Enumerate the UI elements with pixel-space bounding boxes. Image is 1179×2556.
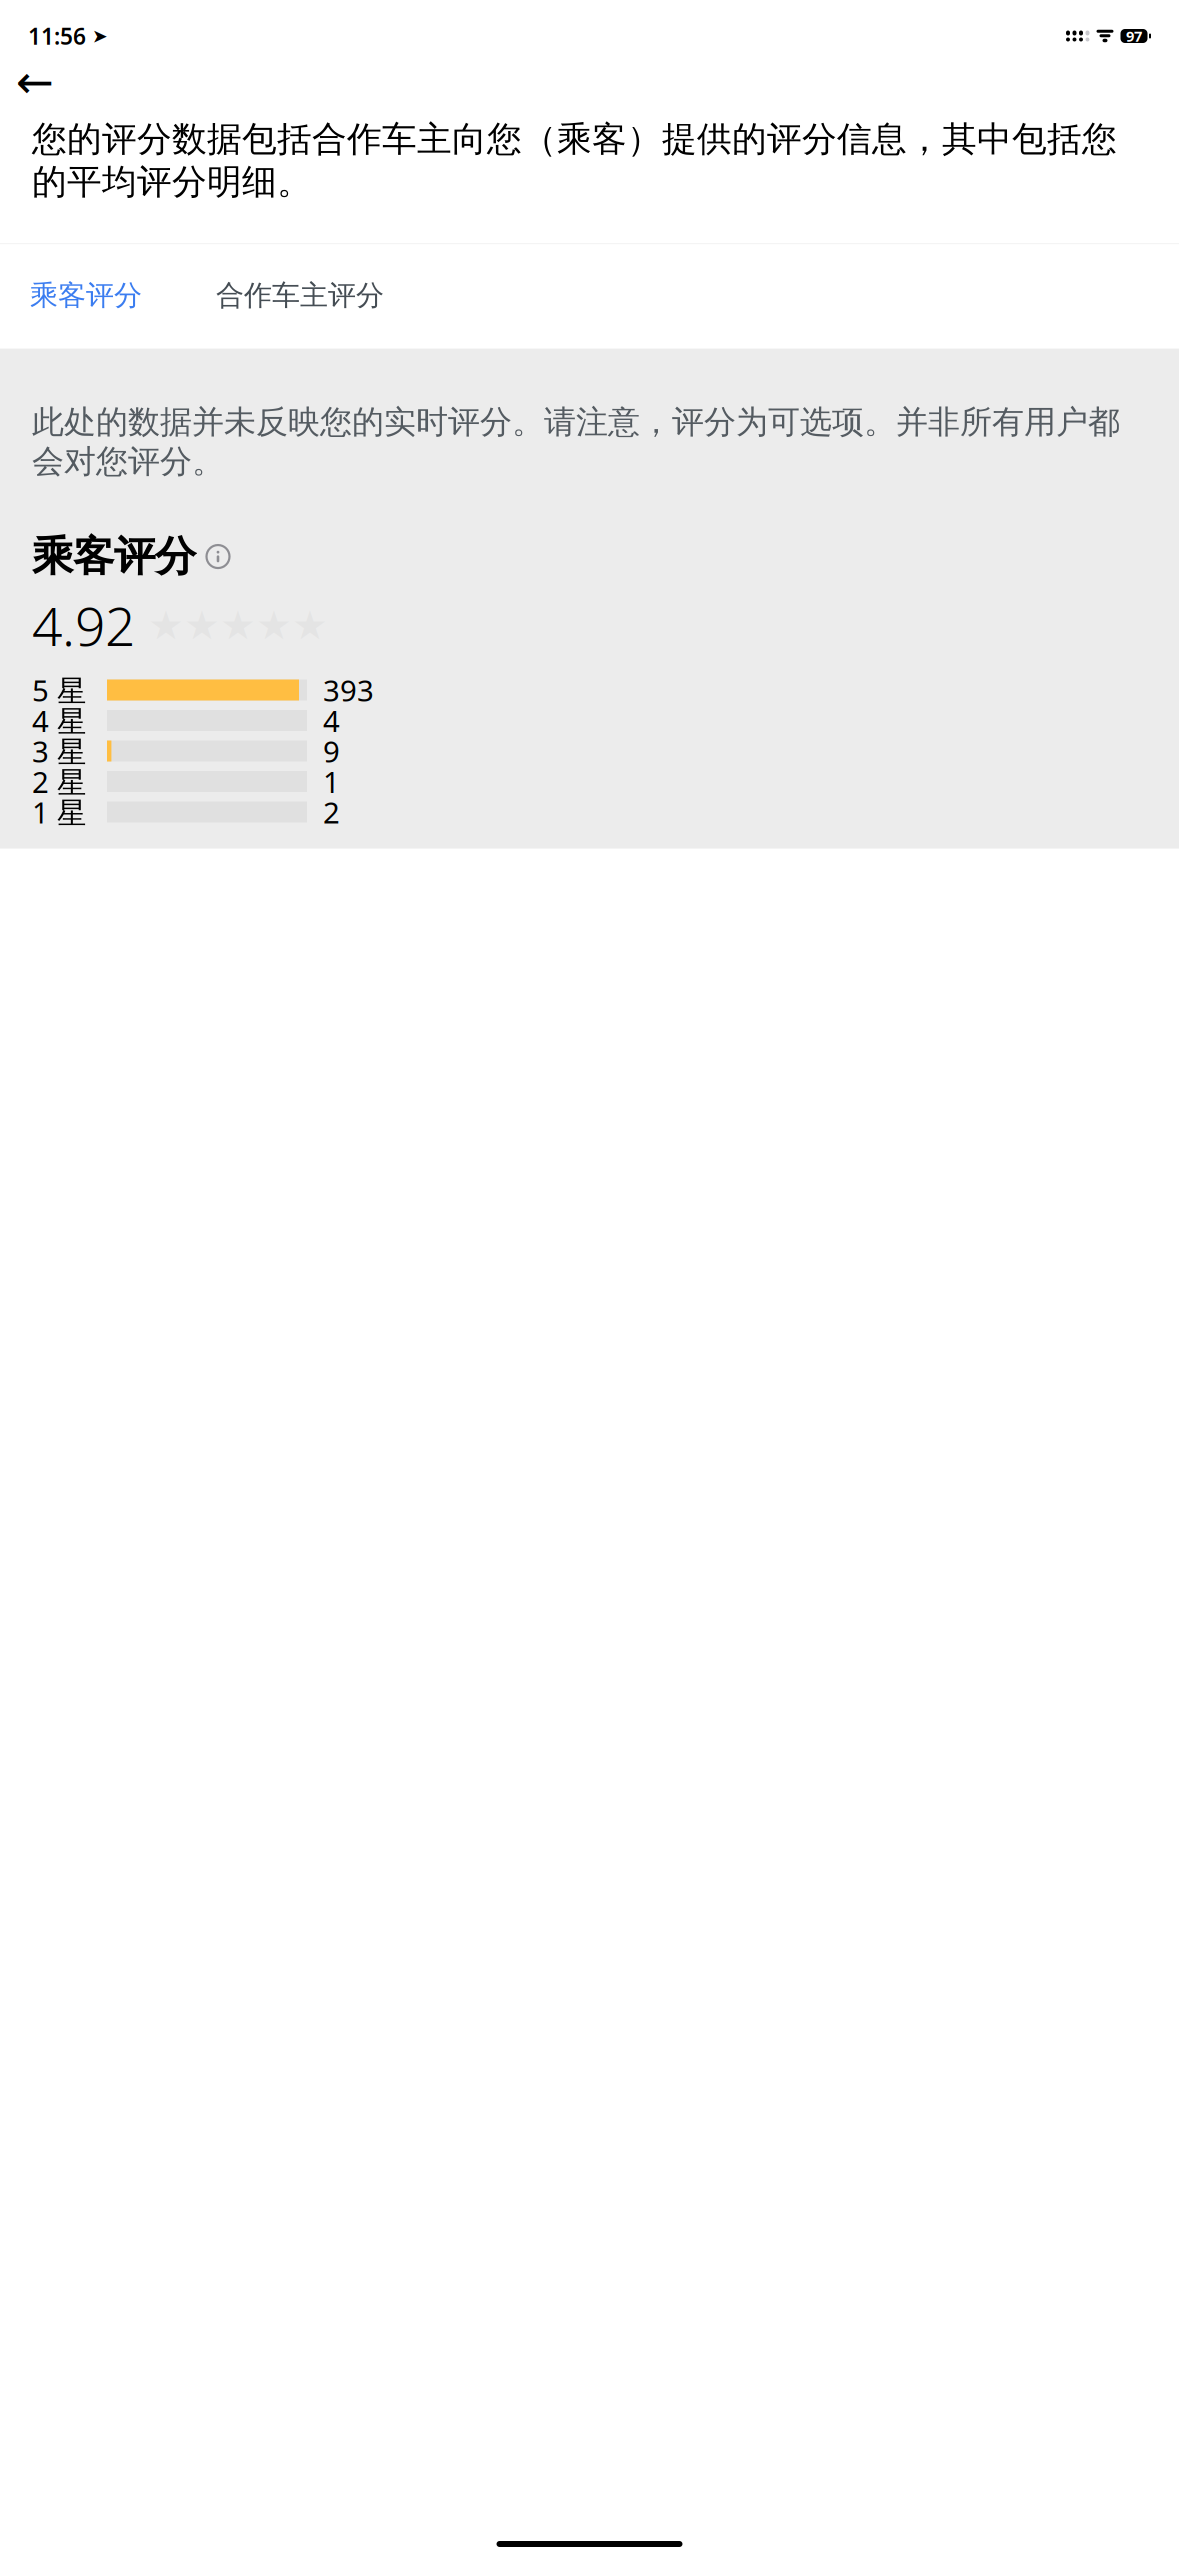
staticText: 此处的数据并未反映您的实时评分。请注意，评分为可选项。并非所有用户都会对您评分。 <box>32 403 1120 481</box>
staticText: 4 <box>323 701 340 740</box>
staticText: 1 星 <box>32 792 86 831</box>
button[interactable]: 乘客评分 <box>30 254 142 337</box>
staticText: 乘客评分 <box>30 278 142 313</box>
staticText: 您的评分数据包括合作车主向您（乘客）提供的评分信息，其中包括您的平均评分明细。 <box>32 118 1117 203</box>
staticText: 2 星 <box>32 762 86 801</box>
staticText: 9 <box>323 731 340 770</box>
staticText: 合作车主评分 <box>216 278 384 313</box>
staticText: 4.92 <box>32 590 135 661</box>
staticText: 2 <box>323 792 340 831</box>
staticText: 5 星 <box>32 670 86 709</box>
button[interactable]: 返回 <box>16 58 66 106</box>
staticText: 11:56 <box>28 21 86 51</box>
staticText: 乘客评分 <box>32 531 196 582</box>
staticText: ← <box>16 56 54 108</box>
staticText: 4 星 <box>32 701 86 740</box>
staticText: ➤ <box>92 25 108 47</box>
staticText: 3 星 <box>32 731 86 770</box>
button[interactable]: 评分说明 <box>205 543 231 569</box>
staticText: 393 <box>323 670 374 709</box>
staticText: 1 <box>323 762 340 801</box>
staticText: 97 <box>1126 26 1142 46</box>
button[interactable]: 合作车主评分 <box>216 254 384 337</box>
